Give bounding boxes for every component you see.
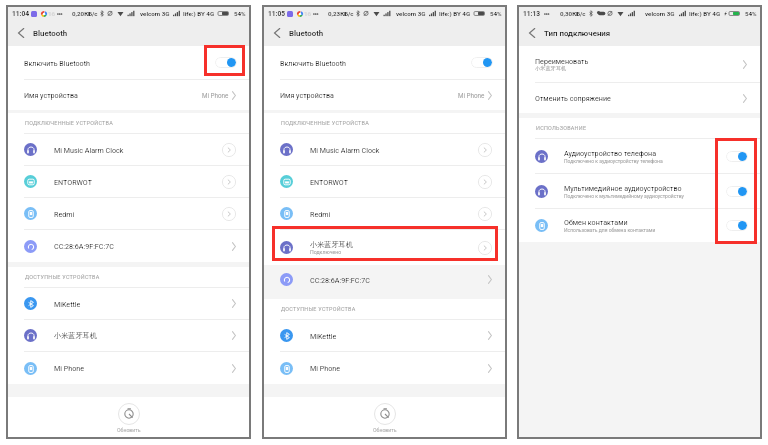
button[interactable]: Toggle — [471, 57, 493, 68]
button[interactable]: MiKettle — [8, 288, 249, 319]
staticText: Тип подключения — [544, 29, 611, 38]
button[interactable]: Обновить — [373, 403, 397, 433]
staticText: Bluetooth — [289, 29, 324, 38]
staticText: Mi Phone — [54, 364, 84, 372]
staticText: CC:28:6A:9F:FC:7C — [310, 276, 370, 284]
staticText: 11:13 — [523, 10, 540, 18]
staticText: Mi Phone — [458, 92, 485, 99]
staticText: Обмен контактами — [564, 218, 628, 226]
staticText: 11:04 — [12, 10, 29, 18]
staticText: Включить Bluetooth — [24, 59, 90, 67]
staticText: Подключено к аудиоустройству телефона — [564, 158, 663, 164]
button[interactable]: Аудиоустройство телефона — [519, 139, 760, 173]
staticText: Использовать для обмена контактами — [564, 227, 656, 233]
staticText: 0,23КБ/c — [328, 10, 354, 17]
button[interactable]: Toggle — [215, 57, 237, 68]
staticText: Mi Phone — [202, 92, 229, 99]
button[interactable]: Mi Music Alarm Clock — [8, 134, 249, 165]
staticText: Переименовать — [535, 57, 589, 65]
staticText: ИСПОЛЬЗОВАНИЕ — [536, 125, 587, 131]
button[interactable]: CC:28:6A:9F:FC:7C — [264, 265, 505, 294]
staticText: 0,20КБ/c — [72, 10, 98, 17]
button[interactable]: Redmi — [264, 198, 505, 229]
button[interactable]: ENTORWOT — [264, 166, 505, 197]
staticText: 小米蓝牙耳机 — [54, 331, 97, 340]
button[interactable]: Toggle — [726, 220, 748, 231]
button[interactable]: 小米蓝牙耳机 — [8, 320, 249, 351]
button[interactable]: MiKettle — [264, 320, 505, 351]
button[interactable]: Back — [519, 20, 544, 46]
button[interactable]: CC:28:6A:9F:FC:7C — [8, 230, 249, 262]
button[interactable]: Mi Phone — [264, 352, 505, 384]
staticText: 0,30КБ/c — [560, 10, 586, 17]
button[interactable]: Имя устройства — [264, 80, 505, 110]
button[interactable]: Включить Bluetooth — [8, 46, 249, 79]
staticText: ENTORWOT — [310, 178, 348, 186]
staticText: 16 — [304, 10, 312, 17]
button[interactable]: Отменить сопряжение — [519, 83, 760, 113]
staticText: 54% — [490, 10, 502, 17]
staticText: Обновить — [373, 427, 397, 433]
staticText: 16 — [48, 10, 56, 17]
staticText: Bluetooth — [33, 29, 68, 38]
button[interactable]: Mi Phone — [8, 352, 249, 384]
staticText: velcom 3G — [140, 10, 170, 17]
button[interactable]: Обновить — [117, 403, 141, 433]
button[interactable]: Toggle — [726, 186, 748, 197]
staticText: MiKettle — [54, 300, 81, 308]
staticText: ПОДКЛЮЧЕННЫЕ УСТРОЙСТВА — [25, 120, 114, 126]
staticText: 54% — [234, 10, 246, 17]
staticText: 54% — [745, 10, 757, 17]
button[interactable]: Toggle — [726, 151, 748, 162]
button[interactable]: Включить Bluetooth — [264, 46, 505, 79]
button[interactable]: Mi Music Alarm Clock — [264, 134, 505, 165]
staticText: life:) BY 4G — [183, 10, 215, 17]
button[interactable]: Redmi — [8, 198, 249, 229]
button[interactable]: Back — [8, 20, 33, 46]
staticText: Имя устройства — [24, 91, 78, 99]
button[interactable]: Мультимедийное аудиоустройство — [519, 174, 760, 208]
button[interactable]: ENTORWOT — [8, 166, 249, 197]
staticText: Redmi — [54, 210, 75, 218]
staticText: life:) BY 4G — [439, 10, 471, 17]
staticText: Имя устройства — [280, 91, 334, 99]
staticText: 11:05 — [268, 10, 285, 18]
staticText: Mi Music Alarm Clock — [310, 146, 380, 154]
button[interactable]: 小米蓝牙耳机 — [264, 230, 505, 265]
staticText: CC:28:6A:9F:FC:7C — [54, 242, 114, 250]
button[interactable]: Обмен контактами — [519, 209, 760, 242]
staticText: life:) BY 4G — [689, 10, 721, 17]
staticText: 小米蓝牙耳机 — [310, 240, 353, 249]
staticText: ДОСТУПНЫЕ УСТРОЙСТВА — [281, 306, 356, 312]
staticText: Аудиоустройство телефона — [564, 149, 657, 157]
staticText: ПОДКЛЮЧЕННЫЕ УСТРОЙСТВА — [281, 120, 370, 126]
staticText: Redmi — [310, 210, 331, 218]
staticText: Отменить сопряжение — [535, 94, 611, 102]
staticText: velcom 3G — [645, 10, 675, 17]
staticText: 小米蓝牙耳机 — [535, 65, 567, 72]
staticText: MiKettle — [310, 332, 337, 340]
button[interactable]: Back — [264, 20, 289, 46]
staticText: Подключено — [310, 249, 342, 255]
staticText: Включить Bluetooth — [280, 59, 346, 67]
staticText: Обновить — [117, 427, 141, 433]
staticText: ДОСТУПНЫЕ УСТРОЙСТВА — [25, 274, 100, 280]
button[interactable]: Переименовать — [519, 46, 760, 82]
button[interactable]: Имя устройства — [8, 80, 249, 110]
staticText: Подключено к мультимедийному аудиоустрой… — [564, 193, 684, 199]
staticText: velcom 3G — [396, 10, 426, 17]
staticText: Mi Phone — [310, 364, 340, 372]
staticText: ENTORWOT — [54, 178, 92, 186]
staticText: Mi Music Alarm Clock — [54, 146, 124, 154]
staticText: Мультимедийное аудиоустройство — [564, 184, 682, 192]
